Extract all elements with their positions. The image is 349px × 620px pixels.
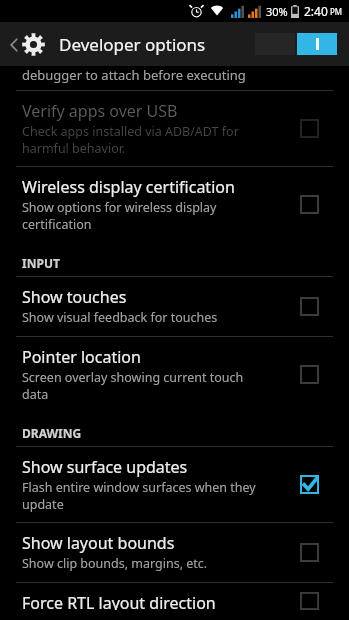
staticText: debugger to attach before executing [22, 66, 246, 84]
staticText: Force RTL layout direction [22, 592, 216, 610]
button[interactable]: Unchecked [295, 292, 323, 320]
button[interactable]: Wireless display certification [0, 167, 349, 242]
staticText: Check apps installed via ADB/ADT for har… [22, 123, 239, 156]
staticText: Show clip bounds, margins, etc. [22, 555, 208, 572]
button[interactable]: Show surface updates [0, 447, 349, 522]
staticText: PM [330, 6, 343, 17]
button[interactable]: Toggle developer options [251, 29, 341, 59]
staticText: 30% [266, 4, 288, 19]
staticText: Pointer location [22, 346, 141, 368]
button[interactable]: Unchecked [295, 538, 323, 566]
staticText: Show touches [22, 286, 127, 308]
staticText: Wireless display certification [22, 176, 235, 198]
staticText: Verify apps over USB [22, 100, 178, 122]
button[interactable]: Unchecked [295, 114, 323, 142]
staticText: 2:40 [304, 3, 328, 19]
button[interactable]: Unchecked [295, 592, 323, 610]
button[interactable]: Show touches [0, 277, 349, 336]
staticText: Show surface updates [22, 456, 188, 478]
button[interactable]: Show layout bounds [0, 523, 349, 582]
button[interactable]: Unchecked [295, 360, 323, 388]
staticText: DRAWING [22, 425, 82, 441]
button[interactable]: Verify apps over USB [0, 91, 349, 166]
staticText: Show options for wireless display certif… [22, 199, 217, 232]
button[interactable]: Checked [295, 470, 323, 498]
staticText: Flash entire window surfaces when they u… [22, 479, 256, 512]
staticText: Screen overlay showing current touch dat… [22, 369, 244, 402]
button[interactable]: Back to Settings [6, 27, 49, 62]
button[interactable]: Unchecked [295, 190, 323, 218]
staticText: INPUT [22, 255, 60, 271]
staticText: Developer options [59, 33, 206, 56]
staticText: Show layout bounds [22, 532, 175, 554]
button[interactable]: Pointer location [0, 337, 349, 412]
button[interactable]: Force RTL layout direction [0, 583, 349, 620]
staticText: Show visual feedback for touches [22, 309, 218, 326]
